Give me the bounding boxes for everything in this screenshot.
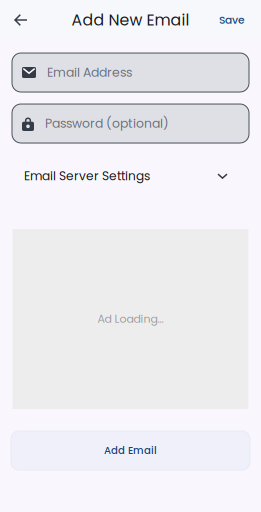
staticText: Add Email	[104, 443, 157, 458]
staticText: Add New Email	[71, 9, 189, 31]
staticText: Save	[219, 12, 245, 27]
staticText: Password (optional)	[45, 115, 169, 132]
button[interactable]: Save	[219, 0, 261, 40]
staticText: Email Server Settings	[24, 167, 150, 184]
button[interactable]: Back	[0, 0, 39, 40]
staticText: Email Address	[47, 64, 132, 81]
button[interactable]: Email Server Settings	[12, 164, 249, 188]
staticText: Ad Loading...	[97, 311, 163, 327]
button[interactable]: Add Email	[11, 431, 250, 470]
